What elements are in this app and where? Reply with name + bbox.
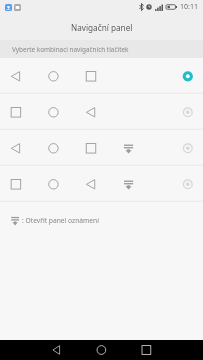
staticText: : Otevřít panel oznámení <box>22 216 99 225</box>
staticText: 10:11 <box>180 2 198 12</box>
button[interactable]: Home <box>88 340 115 360</box>
button[interactable]: Back <box>43 340 70 360</box>
staticText: Vyberte kombinaci navigačních tlačítek <box>12 45 129 54</box>
button[interactable] <box>0 166 203 202</box>
button[interactable]: Recents <box>133 340 160 360</box>
button[interactable] <box>0 130 203 166</box>
staticText: Navigační panel <box>71 22 133 33</box>
button[interactable] <box>0 94 203 130</box>
button[interactable] <box>0 58 203 94</box>
